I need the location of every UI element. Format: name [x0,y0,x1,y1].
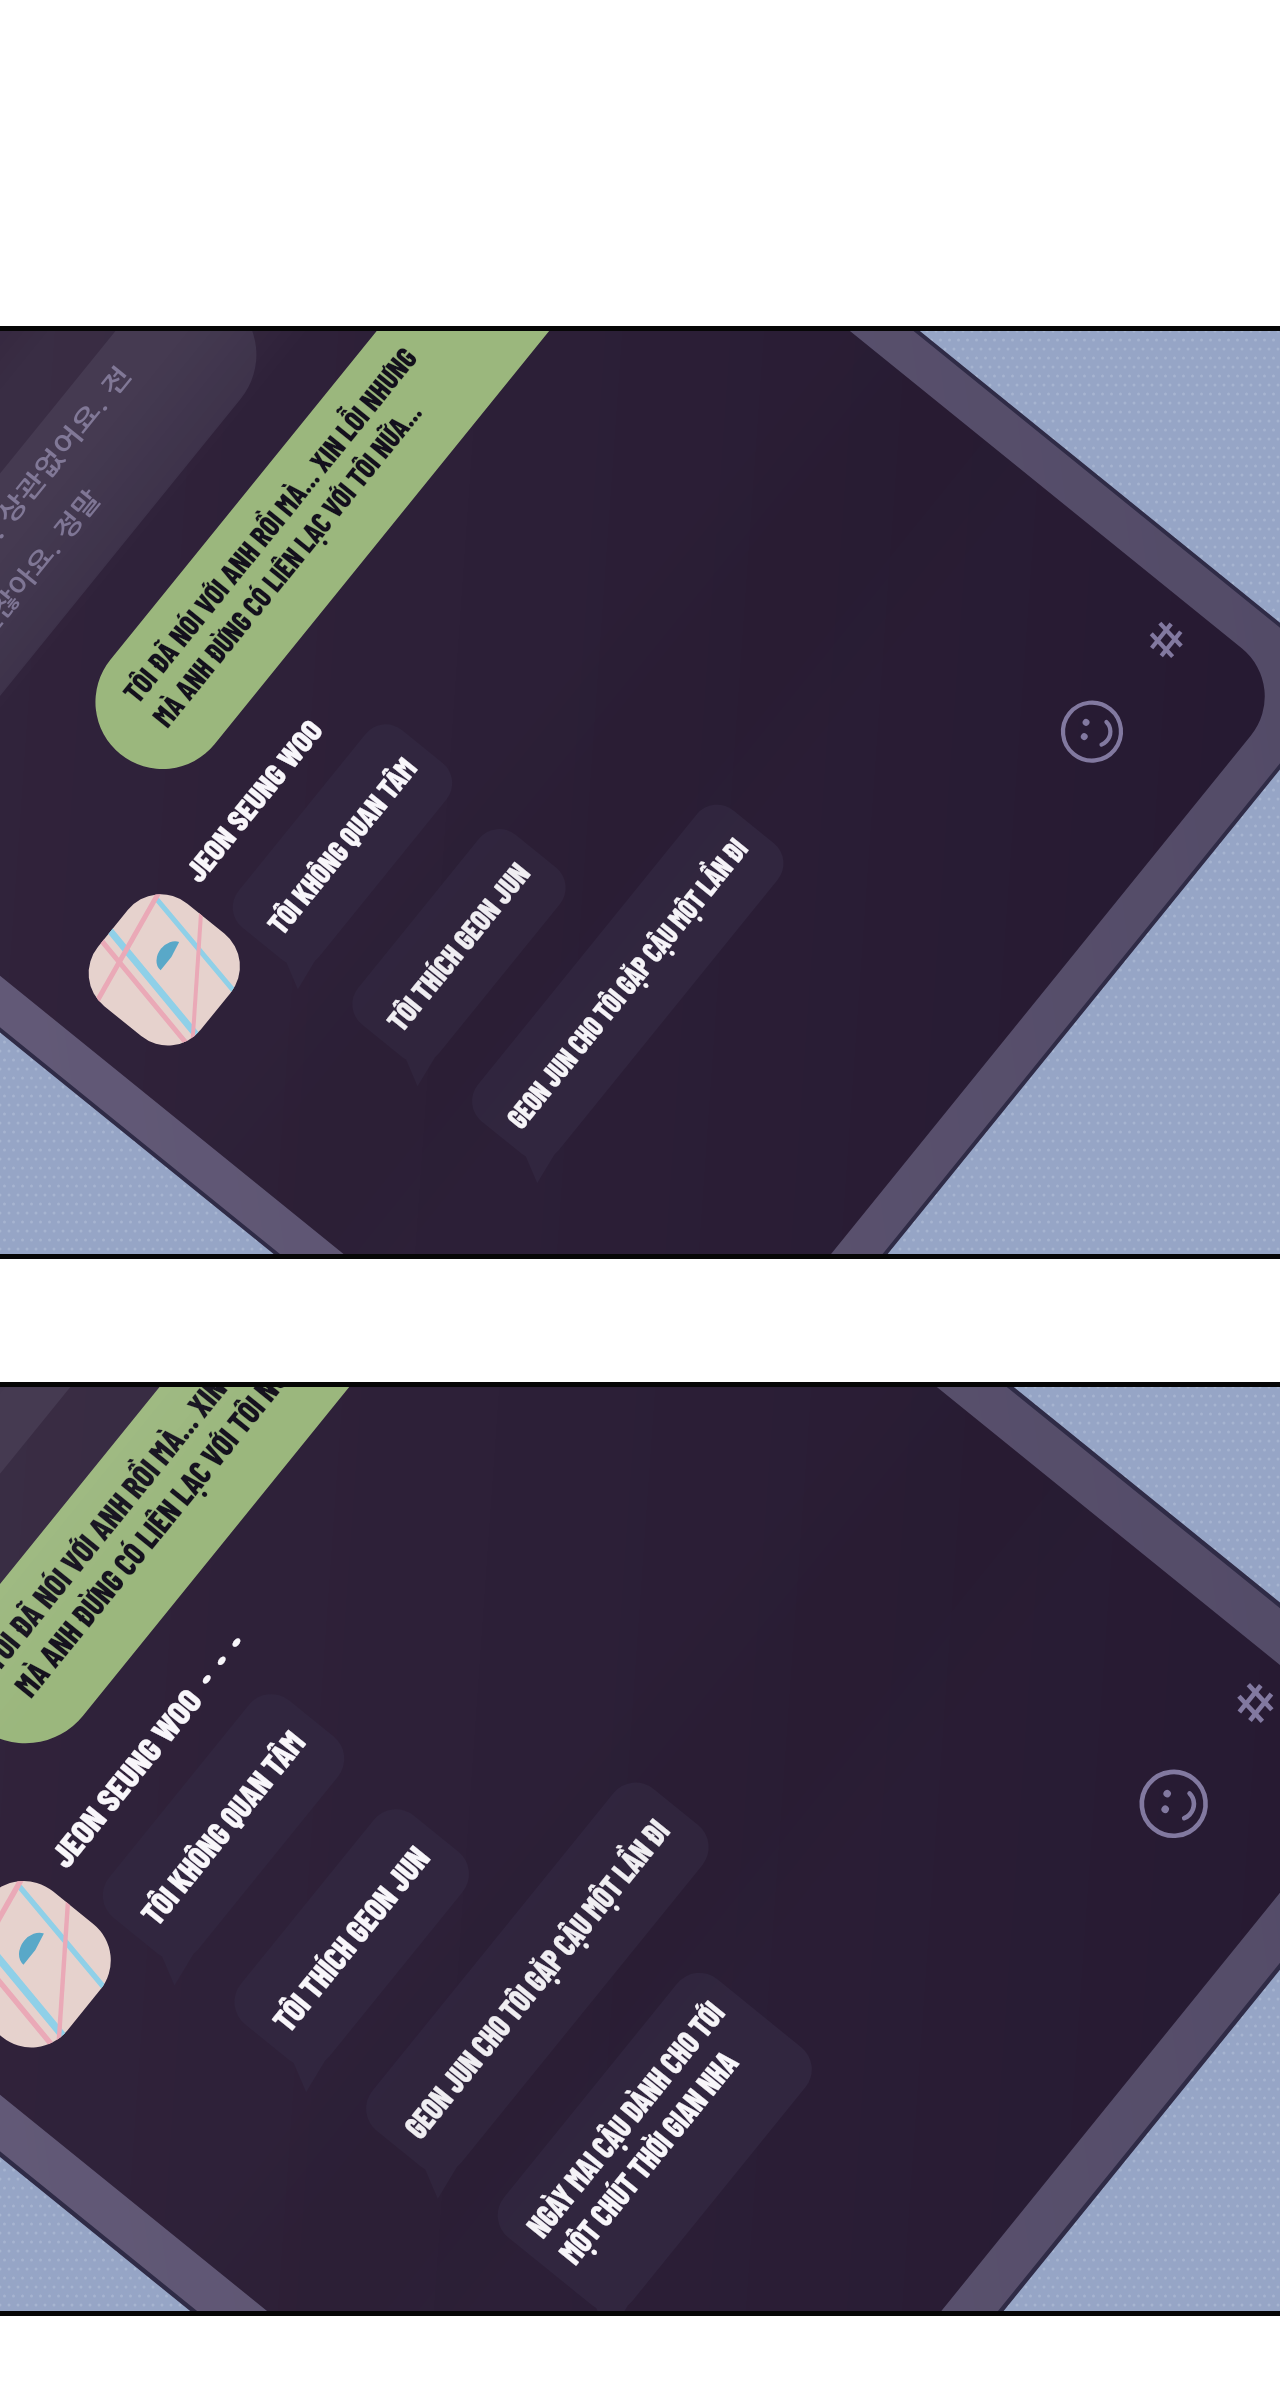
button[interactable]: TÔI KHÔNG QUAN TÂM [96,1780,396,2010]
button[interactable]: GEON JUN CHO TÔI GẶP CẬU MỘT LẦN ĐI [446,980,826,1240]
button[interactable]: JEON SEUNG WOO profile photo [0,1940,150,2090]
button[interactable]: NGÀY MAI CẬU DÀNH CHO TỚI MỘT CHÚT THỜI … [500,2140,880,2310]
button[interactable]: Hashtag [1208,1676,1280,1748]
button[interactable]: TÔI THÍCH GEON JUN [316,852,616,1072]
button[interactable]: GEON JUN CHO TÔI GẶP CẬU MỘT LẦN ĐI [370,2050,750,2300]
button[interactable]: Hashtag [1132,604,1202,674]
button[interactable]: Emoji [1148,1756,1222,1830]
button[interactable]: Sent message bubble [56,336,536,736]
button[interactable]: TÔI THÍCH GEON JUN [232,1920,532,2150]
button[interactable]: Emoji [1066,700,1138,772]
button[interactable]: TÔI KHÔNG QUAN TÂM [184,724,484,944]
button[interactable]: JEON SEUNG WOO profile photo [86,892,242,1048]
